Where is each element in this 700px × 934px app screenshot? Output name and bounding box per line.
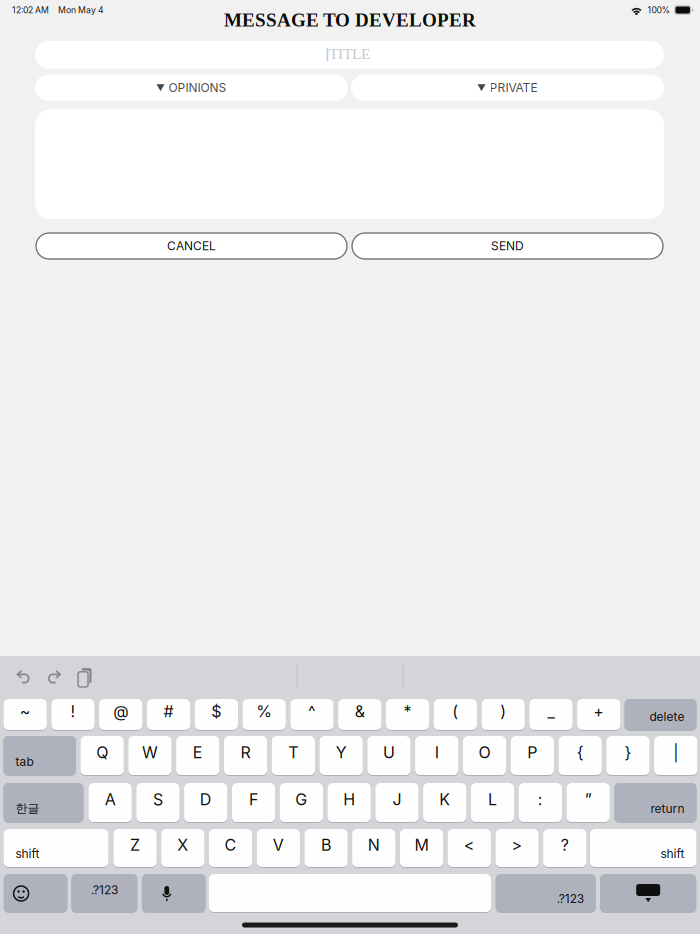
- button[interactable]: CANCEL: [36, 233, 347, 259]
- staticText: PRIVATE: [489, 80, 537, 95]
- button[interactable]: shift: [590, 829, 696, 868]
- button[interactable]: T: [272, 736, 315, 776]
- button[interactable]: tab: [3, 736, 76, 776]
- button[interactable]: S: [136, 783, 180, 823]
- button[interactable]: .?123: [71, 874, 137, 913]
- staticText: SEND: [491, 239, 524, 253]
- staticText: C: [225, 835, 237, 855]
- staticText: N: [368, 835, 380, 855]
- button[interactable]: %: [242, 699, 286, 731]
- staticText: OPINIONS: [168, 80, 226, 95]
- button[interactable]: P: [511, 736, 554, 776]
- button[interactable]: W: [128, 736, 172, 776]
- button[interactable]: O: [463, 736, 506, 776]
- button[interactable]: SEND: [352, 233, 663, 259]
- button[interactable]: M: [400, 829, 443, 868]
- button[interactable]: delete: [624, 699, 696, 731]
- button[interactable]: ~: [3, 699, 47, 731]
- button[interactable]: :: [519, 783, 562, 823]
- button[interactable]: }: [606, 736, 650, 776]
- button[interactable]: !: [51, 699, 95, 731]
- staticText: M: [414, 835, 428, 855]
- button[interactable]: OPINIONS: [35, 75, 348, 101]
- button[interactable]: Q: [80, 736, 124, 776]
- button[interactable]: .?123: [496, 874, 596, 913]
- button[interactable]: E: [176, 736, 219, 776]
- staticText: (: [452, 702, 458, 721]
- button[interactable]: C: [209, 829, 252, 868]
- button[interactable]: D: [184, 783, 227, 823]
- staticText: Q: [96, 743, 108, 762]
- staticText: L: [488, 790, 497, 809]
- staticText: tab: [15, 754, 33, 769]
- staticText: .?123: [557, 891, 584, 906]
- button[interactable]: ^: [290, 699, 334, 731]
- staticText: ”: [585, 790, 592, 809]
- staticText: |: [673, 743, 678, 762]
- button[interactable]: L: [471, 783, 514, 823]
- button[interactable]: ?: [543, 829, 586, 868]
- button[interactable]: @: [99, 699, 142, 731]
- button[interactable]: ): [481, 699, 525, 731]
- staticText: $: [211, 702, 221, 721]
- button[interactable]: PRIVATE: [351, 75, 664, 101]
- button[interactable]: shift: [3, 829, 108, 868]
- button[interactable]: G: [280, 783, 323, 823]
- button[interactable]: (: [434, 699, 477, 731]
- button[interactable]: Redo: [39, 663, 69, 691]
- button[interactable]: <: [448, 829, 491, 868]
- button[interactable]: H: [327, 783, 371, 823]
- button[interactable]: I: [415, 736, 458, 776]
- button[interactable]: Dictate: [142, 874, 206, 913]
- staticText: V: [273, 835, 284, 855]
- staticText: CANCEL: [167, 239, 216, 253]
- button[interactable]: [209, 874, 491, 913]
- button[interactable]: 한글: [3, 783, 83, 823]
- button[interactable]: |: [654, 736, 697, 776]
- button[interactable]: Z: [113, 829, 157, 868]
- button[interactable]: ”: [566, 783, 610, 823]
- button[interactable]: Hide keyboard: [600, 874, 696, 913]
- button[interactable]: &: [338, 699, 381, 731]
- button[interactable]: Y: [319, 736, 363, 776]
- button[interactable]: X: [161, 829, 204, 868]
- button[interactable]: Paste: [70, 663, 100, 691]
- button[interactable]: J: [375, 783, 419, 823]
- staticText: ?: [561, 835, 569, 855]
- button[interactable]: return: [614, 783, 696, 823]
- button[interactable]: A: [88, 783, 132, 823]
- staticText: P: [527, 743, 537, 762]
- button[interactable]: *: [386, 699, 429, 731]
- button[interactable]: N: [352, 829, 395, 868]
- button[interactable]: F: [232, 783, 275, 823]
- staticText: G: [295, 790, 307, 809]
- staticText: U: [383, 743, 395, 762]
- button[interactable]: $: [195, 699, 238, 731]
- button[interactable]: +: [577, 699, 620, 731]
- staticText: 한글: [15, 801, 39, 816]
- button[interactable]: Emoji: [4, 874, 68, 913]
- button[interactable]: U: [367, 736, 411, 776]
- staticText: ^: [308, 702, 316, 721]
- button[interactable]: Title: [35, 41, 664, 69]
- button[interactable]: K: [423, 783, 466, 823]
- staticText: Y: [336, 743, 347, 762]
- button[interactable]: {: [558, 736, 602, 776]
- button[interactable]: B: [304, 829, 348, 868]
- staticText: <: [464, 835, 475, 855]
- button[interactable]: >: [495, 829, 539, 868]
- button[interactable]: _: [529, 699, 573, 731]
- staticText: {: [577, 743, 584, 762]
- button[interactable]: V: [257, 829, 300, 868]
- button[interactable]: R: [224, 736, 267, 776]
- staticText: D: [200, 790, 212, 809]
- staticText: 12:02 AM: [12, 5, 49, 15]
- staticText: ~: [20, 702, 31, 721]
- button[interactable]: #: [147, 699, 190, 731]
- staticText: J: [392, 790, 401, 809]
- staticText: :: [538, 790, 543, 809]
- staticText: H: [343, 790, 355, 809]
- button[interactable]: Undo: [8, 663, 38, 691]
- staticText: MESSAGE TO DEVELOPER: [224, 9, 476, 30]
